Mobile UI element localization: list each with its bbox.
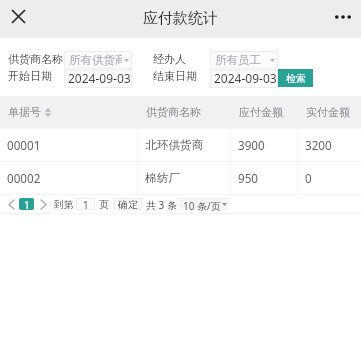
- staticText: 开始日期: [8, 69, 52, 83]
- button[interactable]: 应付金额: [231, 96, 297, 128]
- staticText: 页: [99, 198, 109, 211]
- button[interactable]: 1: [76, 198, 95, 210]
- staticText: 3900: [238, 137, 265, 153]
- staticText: 3200: [305, 137, 332, 153]
- staticText: 0: [305, 170, 312, 186]
- button[interactable]: 确定: [114, 198, 142, 210]
- staticText: 所有员工: [215, 53, 261, 67]
- staticText: 结束日期: [153, 69, 197, 83]
- staticText: 供货商名称: [8, 52, 63, 66]
- button[interactable]: 所有员工: [210, 51, 278, 69]
- staticText: 共 3 条: [146, 198, 177, 212]
- button[interactable]: 00002: [0, 162, 361, 194]
- staticText: 950: [238, 170, 259, 186]
- staticText: 供货商名称: [146, 105, 201, 119]
- staticText: 所有供货商: [69, 53, 122, 67]
- staticText: 2024-09-03: [68, 70, 131, 86]
- staticText: 00001: [7, 137, 41, 153]
- staticText: 应付金额: [239, 105, 283, 119]
- button[interactable]: 检索: [278, 69, 313, 87]
- staticText: 单据号: [8, 105, 41, 119]
- staticText: 00002: [7, 170, 41, 186]
- button[interactable]: 所有供货商: [64, 51, 132, 69]
- button[interactable]: More options: [328, 2, 358, 32]
- staticText: 到第: [54, 198, 74, 211]
- button[interactable]: 2024-09-03: [64, 70, 132, 88]
- button[interactable]: 实付金额: [298, 96, 361, 128]
- button[interactable]: 00001: [0, 129, 361, 161]
- button[interactable]: 供货商名称: [138, 96, 230, 128]
- button[interactable]: Previous page: [3, 196, 19, 212]
- staticText: 经办人: [153, 52, 186, 66]
- staticText: 2024-09-03: [214, 70, 277, 86]
- staticText: 实付金额: [306, 105, 350, 119]
- staticText: 应付款统计: [143, 9, 218, 28]
- staticText: 1: [24, 198, 30, 210]
- staticText: 确定: [118, 198, 138, 210]
- button[interactable]: 2024-09-03: [210, 70, 278, 88]
- staticText: 1: [83, 198, 89, 210]
- button[interactable]: 1: [19, 198, 34, 210]
- staticText: 北环供货商: [145, 138, 204, 153]
- button[interactable]: 10 条/页: [179, 198, 228, 210]
- button[interactable]: Next page: [35, 196, 51, 212]
- button[interactable]: 单据号: [0, 96, 137, 128]
- staticText: 检索: [286, 72, 306, 85]
- button[interactable]: Close: [4, 2, 32, 30]
- staticText: 棉纺厂: [145, 171, 181, 186]
- staticText: 10 条/页: [183, 199, 221, 211]
